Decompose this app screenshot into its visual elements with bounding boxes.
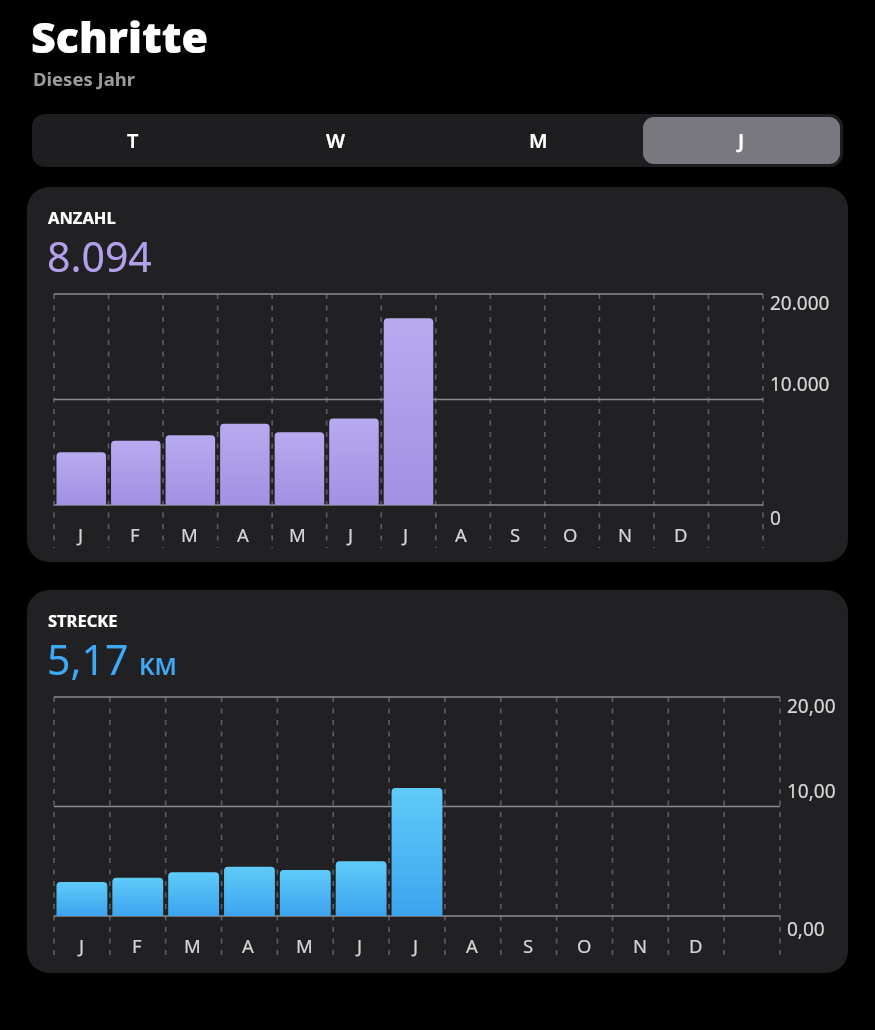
staticText: J — [79, 933, 85, 958]
staticText: STRECKE — [48, 609, 118, 631]
staticText: M — [181, 522, 198, 547]
staticText: D — [689, 933, 703, 958]
staticText: S — [523, 933, 534, 958]
staticText: N — [633, 933, 648, 958]
staticText: J — [738, 127, 745, 154]
staticText: 10,00 — [787, 778, 836, 804]
staticText: A — [237, 522, 249, 547]
button[interactable]: M — [440, 117, 637, 164]
staticText: Dieses Jahr — [33, 66, 136, 91]
staticText: 8.094 — [47, 228, 152, 284]
staticText: M — [184, 933, 201, 958]
staticText: N — [618, 522, 633, 547]
staticText: O — [563, 522, 578, 547]
button[interactable]: W — [237, 117, 434, 164]
staticText: F — [132, 933, 142, 958]
button[interactable]: ANZAHL — [27, 187, 848, 562]
staticText: J — [348, 522, 354, 547]
staticText: M — [296, 933, 313, 958]
staticText: M — [289, 522, 306, 547]
staticText: 5,17 — [47, 631, 129, 687]
staticText: A — [466, 933, 478, 958]
staticText: 0 — [770, 505, 781, 531]
staticText: KM — [139, 649, 177, 682]
staticText: A — [455, 522, 467, 547]
staticText: J — [413, 933, 419, 958]
staticText: S — [510, 522, 521, 547]
button[interactable]: STRECKE — [27, 590, 848, 973]
staticText: F — [130, 522, 140, 547]
staticText: 20,00 — [787, 693, 836, 719]
staticText: 20.000 — [770, 290, 830, 316]
staticText: J — [78, 522, 84, 547]
staticText: D — [674, 522, 688, 547]
staticText: A — [242, 933, 254, 958]
staticText: 0,00 — [787, 916, 825, 942]
staticText: T — [127, 127, 139, 154]
staticText: 10.000 — [770, 371, 830, 397]
staticText: J — [357, 933, 363, 958]
staticText: Schritte — [31, 7, 209, 66]
staticText: J — [403, 522, 409, 547]
staticText: W — [326, 127, 346, 154]
staticText: M — [529, 127, 548, 154]
staticText: ANZAHL — [48, 206, 116, 228]
staticText: O — [577, 933, 592, 958]
button[interactable]: J — [643, 117, 840, 164]
button[interactable]: T — [35, 117, 231, 164]
